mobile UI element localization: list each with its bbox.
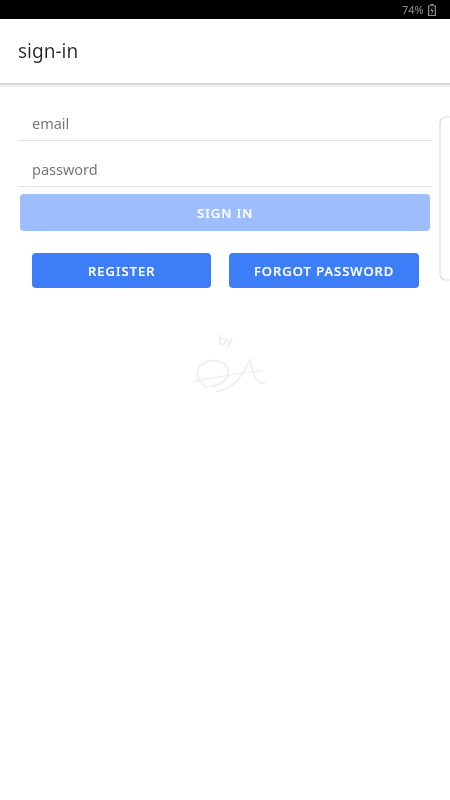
button[interactable]: REGISTER [32,253,211,288]
staticText: by [218,331,233,349]
button[interactable]: email [18,105,432,141]
staticText: FORGOT PASSWORD [254,262,395,280]
staticText: SIGN IN [197,204,254,222]
staticText: REGISTER [88,262,156,280]
staticText: 74% [402,2,424,17]
staticText: email [32,113,70,133]
button[interactable]: FORGOT PASSWORD [229,253,419,288]
button[interactable]: password [18,151,432,187]
staticText: sign-in [18,38,79,64]
button[interactable]: SIGN IN [20,194,430,231]
staticText: password [32,159,98,179]
